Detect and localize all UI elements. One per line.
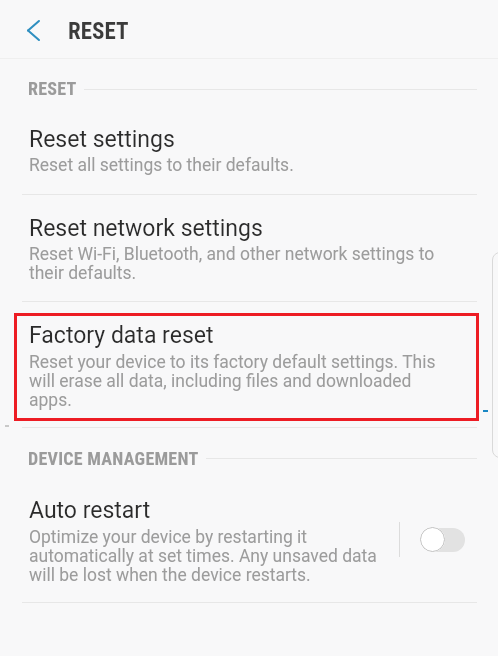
- staticText: Reset all settings to their defaults.: [29, 155, 294, 176]
- button[interactable]: Auto restart: [0, 497, 498, 585]
- button[interactable]: Reset network settings: [0, 215, 498, 283]
- staticText: Auto restart: [29, 497, 151, 524]
- button[interactable]: Reset settings: [0, 126, 498, 176]
- staticText: Factory data reset: [29, 322, 214, 349]
- button[interactable]: Back: [10, 1, 56, 59]
- staticText: DEVICE MANAGEMENT: [28, 448, 199, 469]
- staticText: Reset settings: [29, 126, 175, 153]
- button[interactable]: Factory data reset: [0, 322, 498, 410]
- button[interactable]: Auto restart toggle: [400, 497, 498, 585]
- staticText: Reset network settings: [29, 215, 263, 242]
- staticText: Reset your device to its factory default…: [29, 352, 436, 410]
- staticText: RESET: [68, 18, 129, 45]
- staticText: Optimize your device by restarting it au…: [29, 527, 377, 585]
- staticText: Reset Wi-Fi, Bluetooth, and other networ…: [29, 244, 435, 283]
- staticText: RESET: [28, 78, 77, 99]
